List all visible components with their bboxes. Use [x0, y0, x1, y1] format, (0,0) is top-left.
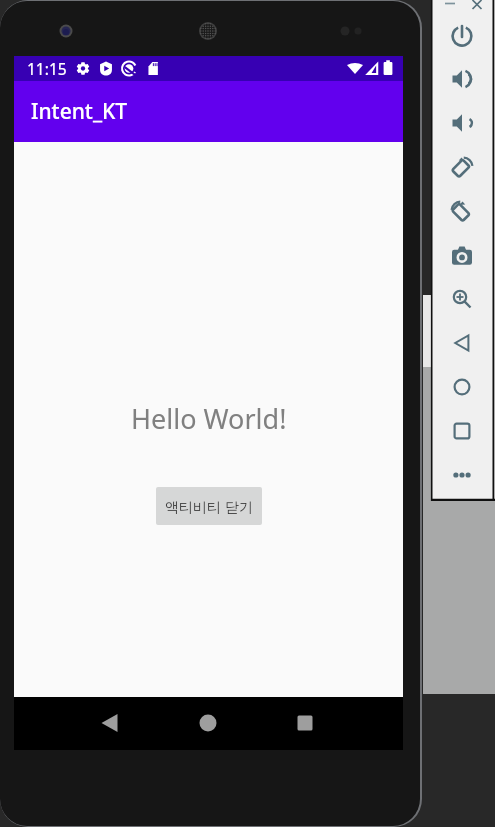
- button[interactable]: Back: [444, 325, 480, 361]
- button[interactable]: Rotate left: [444, 149, 480, 185]
- button[interactable]: Screenshot: [444, 237, 480, 273]
- button[interactable]: Home: [444, 369, 480, 405]
- button[interactable]: Overview: [444, 413, 480, 449]
- button[interactable]: Power: [444, 17, 480, 53]
- button[interactable]: 액티비티 닫기: [156, 487, 262, 525]
- staticText: 11:15: [27, 58, 67, 79]
- button[interactable]: Home: [186, 701, 230, 745]
- button[interactable]: Recents: [283, 701, 327, 745]
- button[interactable]: Back: [88, 701, 132, 745]
- button[interactable]: Volume down: [444, 105, 480, 141]
- button[interactable]: More: [444, 457, 480, 493]
- staticText: 액티비티 닫기: [165, 497, 253, 516]
- button[interactable]: Zoom: [444, 281, 480, 317]
- staticText: Intent_KT: [31, 97, 128, 126]
- button[interactable]: Rotate right: [444, 193, 480, 229]
- staticText: Hello World!: [131, 400, 287, 437]
- button[interactable]: Volume up: [444, 61, 480, 97]
